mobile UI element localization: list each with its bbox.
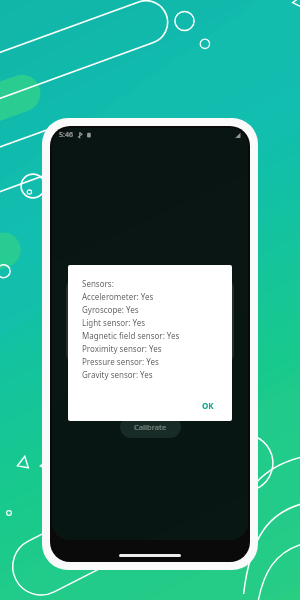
- staticText: Gravity sensor: Yes: [82, 369, 153, 380]
- staticText: Light sensor: Yes: [82, 317, 146, 328]
- staticText: Accelerometer: Yes: [82, 291, 154, 302]
- button[interactable]: OK: [194, 396, 222, 415]
- staticText: Sensors:: [82, 278, 114, 289]
- button[interactable]: Calibrate: [120, 416, 181, 438]
- staticText: Pressure sensor: Yes: [82, 356, 159, 367]
- staticText: 5:46: [59, 130, 73, 140]
- staticText: Calibrate: [134, 422, 167, 432]
- staticText: Gyroscope: Yes: [82, 304, 139, 315]
- staticText: Proximity sensor: Yes: [82, 343, 162, 354]
- staticText: OK: [202, 400, 214, 411]
- staticText: Magnetic field sensor: Yes: [82, 330, 180, 341]
